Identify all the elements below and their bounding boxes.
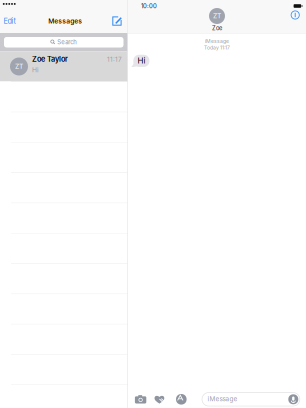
staticText: Edit <box>3 17 15 25</box>
staticText: Zoe <box>212 25 222 31</box>
staticText: 11:17 <box>107 55 122 63</box>
button[interactable]: Message field <box>202 392 300 406</box>
button[interactable]: Compose <box>100 14 127 28</box>
button[interactable]: Digital Touch <box>150 392 169 406</box>
staticText: iMessage <box>205 38 229 44</box>
staticText: ZT <box>213 12 221 20</box>
staticText: Hi <box>32 66 39 74</box>
staticText: Search <box>57 38 77 46</box>
button[interactable]: Details <box>287 8 303 22</box>
button[interactable]: Search <box>4 37 123 47</box>
button[interactable]: ZT <box>0 51 127 81</box>
staticText: iMessage <box>207 395 237 403</box>
staticText: Today 11:17 <box>204 45 230 51</box>
staticText: Zoe Taylor <box>32 55 68 63</box>
staticText: Hi <box>137 56 145 65</box>
button[interactable]: Camera <box>131 392 150 406</box>
staticText: ZT <box>15 62 23 70</box>
staticText: 10:00 <box>141 2 157 10</box>
staticText: Messages <box>48 17 82 25</box>
button[interactable]: Edit <box>0 14 25 28</box>
button[interactable]: Apps <box>169 392 194 406</box>
